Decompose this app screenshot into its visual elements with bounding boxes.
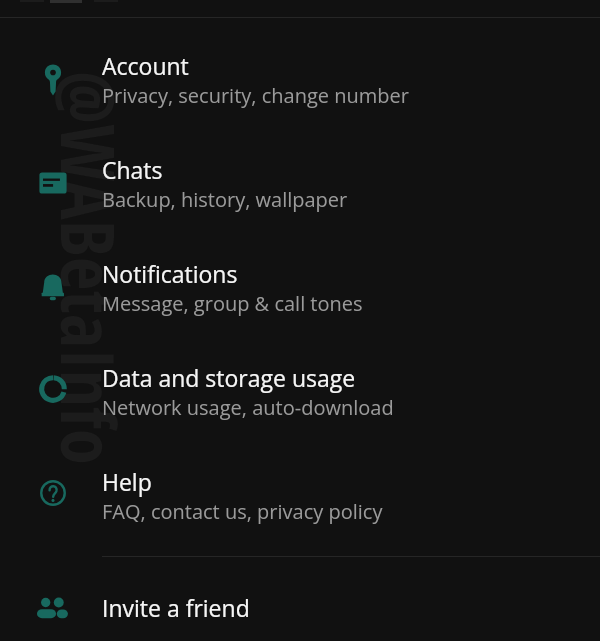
button[interactable]: Account — [0, 34, 600, 138]
staticText: Notifications — [102, 258, 238, 289]
staticText: Message, group & call tones — [102, 290, 363, 317]
button[interactable]: Chats — [0, 138, 600, 242]
staticText: Backup, history, wallpaper — [102, 186, 348, 213]
staticText: FAQ, contact us, privacy policy — [102, 498, 383, 525]
staticText: Account — [102, 50, 189, 81]
staticText: Network usage, auto-download — [102, 394, 394, 421]
staticText: Chats — [102, 154, 163, 185]
other: Account — [35, 62, 71, 98]
button[interactable]: Help — [0, 450, 600, 554]
staticText: @WABetaInfo — [47, 71, 139, 465]
staticText: Data and storage usage — [102, 362, 356, 393]
button[interactable]: Invite a friend — [0, 576, 600, 638]
staticText: Help — [102, 466, 152, 497]
other: Chats — [35, 165, 71, 201]
other: Data and storage usage — [35, 371, 71, 407]
other: Notifications — [35, 268, 71, 304]
other: Help — [35, 475, 71, 511]
button[interactable]: Notifications — [0, 242, 600, 346]
other: Invite a friend — [35, 590, 71, 626]
staticText: Invite a friend — [102, 592, 250, 623]
button[interactable]: Data and storage usage — [0, 346, 600, 450]
staticText: Privacy, security, change number — [102, 82, 409, 109]
